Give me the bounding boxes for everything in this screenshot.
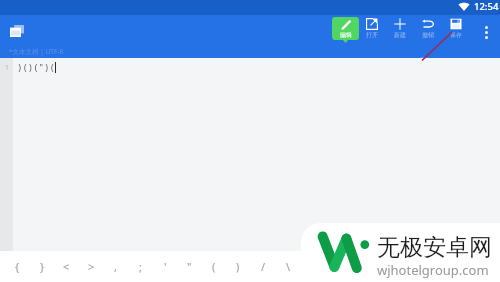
button[interactable]: 新建 [388, 17, 412, 41]
staticText: ) [236, 259, 240, 274]
staticText: " [187, 259, 192, 274]
button[interactable]: 编辑 [332, 17, 359, 43]
staticText: wjhotelgroup.com [377, 261, 489, 279]
staticText: , [114, 259, 117, 274]
button[interactable]: More options [476, 17, 496, 47]
staticText: 打开 [366, 31, 378, 39]
staticText: *文本文档 | UTF-8 [9, 47, 64, 56]
button[interactable]: " [177, 251, 201, 282]
staticText: \ [286, 259, 291, 274]
staticText: ' [164, 259, 167, 274]
staticText: 保存 [450, 31, 462, 39]
staticText: > [88, 259, 95, 274]
button[interactable]: / [251, 251, 275, 282]
button[interactable]: } [30, 251, 54, 282]
button[interactable]: > [79, 251, 103, 282]
staticText: ( [212, 259, 216, 274]
button[interactable]: \ [276, 251, 300, 282]
staticText: } [40, 259, 45, 274]
staticText: 撤销 [422, 31, 434, 39]
button[interactable]: ' [153, 251, 177, 282]
staticText: { [15, 259, 20, 274]
button[interactable]: 撤销 [416, 17, 440, 41]
staticText: 1 [5, 63, 10, 73]
staticText: < [63, 259, 70, 274]
button[interactable]: ) [226, 251, 250, 282]
staticText: 无极安卓网 [377, 233, 492, 262]
button[interactable]: Documents [4, 18, 30, 44]
staticText: )()(")( [17, 61, 55, 73]
staticText: 编辑 [340, 31, 352, 39]
button[interactable]: 保存 [444, 17, 468, 41]
staticText: 新建 [394, 31, 406, 39]
button[interactable]: < [54, 251, 78, 282]
staticText: 12:54 [474, 0, 499, 13]
staticText: / [261, 259, 266, 274]
button[interactable]: , [103, 251, 127, 282]
button[interactable]: 打开 [360, 17, 384, 41]
staticText: ; [139, 259, 142, 274]
button[interactable]: ; [128, 251, 152, 282]
button[interactable]: ( [202, 251, 226, 282]
button[interactable]: { [5, 251, 29, 282]
